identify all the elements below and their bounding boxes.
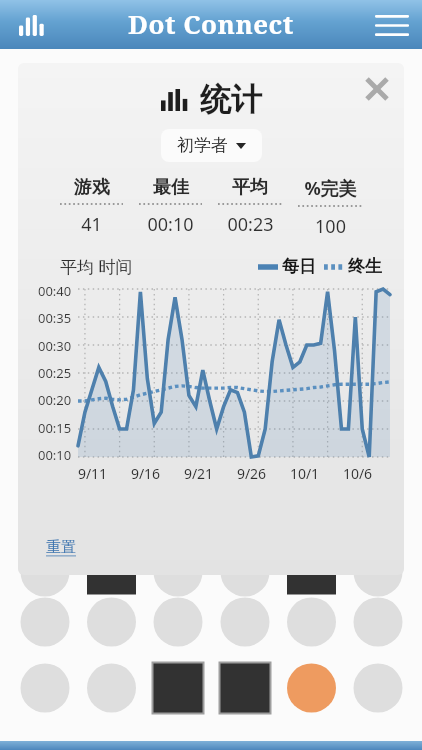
staticText: 终生 bbox=[348, 256, 382, 277]
staticText: 10/1 bbox=[278, 464, 331, 483]
staticText: Dot Connect bbox=[128, 6, 294, 41]
staticText: 重置 bbox=[46, 538, 76, 557]
staticText: 游戏 bbox=[74, 176, 110, 199]
staticText: 00:35 bbox=[38, 309, 72, 327]
staticText: 最佳 bbox=[153, 176, 189, 199]
staticText: 平均 时间 bbox=[60, 255, 133, 278]
staticText: 00:10 bbox=[147, 212, 194, 237]
staticText: 100 bbox=[315, 214, 346, 239]
staticText: 9/16 bbox=[119, 464, 172, 483]
staticText: 00:25 bbox=[38, 364, 72, 382]
button[interactable]: 重置 bbox=[42, 534, 80, 561]
staticText: 10/6 bbox=[331, 464, 384, 483]
staticText: 初学者 bbox=[177, 135, 228, 156]
button[interactable]: 初学者 bbox=[161, 129, 262, 162]
button[interactable]: Statistics bbox=[10, 3, 54, 47]
staticText: 00:40 bbox=[38, 282, 72, 300]
staticText: 9/11 bbox=[66, 464, 119, 483]
staticText: 每日 bbox=[282, 256, 316, 277]
staticText: 9/21 bbox=[172, 464, 225, 483]
staticText: 00:30 bbox=[38, 337, 72, 355]
staticText: 9/26 bbox=[225, 464, 278, 483]
staticText: 00:20 bbox=[38, 391, 72, 409]
staticText: 平均 bbox=[232, 176, 268, 199]
staticText: 41 bbox=[81, 212, 102, 237]
staticText: 00:10 bbox=[38, 446, 72, 464]
staticText: 00:15 bbox=[38, 419, 72, 437]
button[interactable]: Close bbox=[357, 69, 397, 109]
button[interactable]: Menu bbox=[369, 2, 415, 48]
staticText: 00:23 bbox=[227, 212, 274, 237]
staticText: 统计 bbox=[200, 80, 262, 119]
staticText: %完美 bbox=[304, 176, 357, 201]
